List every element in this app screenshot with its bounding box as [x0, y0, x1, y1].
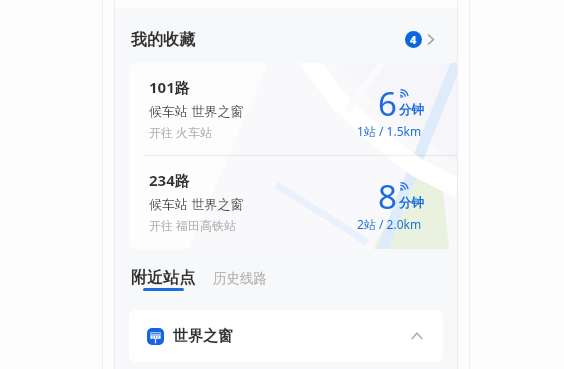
- staticText: 234路: [149, 170, 190, 190]
- staticText: 世界之窗: [173, 327, 233, 346]
- staticText: 分钟: [399, 102, 424, 118]
- staticText: 6: [378, 81, 397, 126]
- staticText: 开往 火车站: [149, 124, 213, 140]
- staticText: 8: [378, 174, 397, 219]
- staticText: 我的收藏: [131, 30, 195, 50]
- staticText: 1站 / 1.5km: [357, 123, 422, 139]
- button[interactable]: 101路: [129, 63, 457, 156]
- staticText: 分钟: [399, 195, 424, 211]
- staticText: 101路: [149, 77, 190, 97]
- button[interactable]: 附近站点: [125, 262, 201, 300]
- button[interactable]: 历史线路: [207, 264, 273, 299]
- button[interactable]: 234路: [129, 156, 457, 249]
- staticText: 4: [410, 32, 417, 47]
- staticText: 附近站点: [131, 268, 195, 288]
- staticText: 候车站 世界之窗: [149, 102, 244, 120]
- staticText: 候车站 世界之窗: [149, 195, 244, 213]
- button[interactable]: Collapse: [406, 325, 428, 347]
- staticText: 开往 福田高铁站: [149, 217, 237, 233]
- staticText: 2站 / 2.0km: [357, 216, 422, 232]
- staticText: 历史线路: [213, 270, 267, 287]
- button[interactable]: 世界之窗: [129, 310, 443, 362]
- button[interactable]: 我的收藏: [115, 12, 457, 67]
